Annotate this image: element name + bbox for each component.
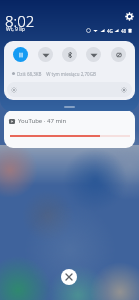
staticText: Wt, 9 lip <box>6 26 25 33</box>
button[interactable]: YouTube · 47 min <box>4 110 135 148</box>
button[interactable]: Brightness <box>7 82 132 97</box>
button[interactable]: Close <box>61 269 77 285</box>
button[interactable]: Auto rotate <box>111 47 126 62</box>
staticText: 4G <box>107 28 113 34</box>
button[interactable]: Settings <box>125 12 134 21</box>
staticText: Dziś 68,3KB W tym miesiącu 2,70GB <box>17 71 96 77</box>
staticText: 8:02 <box>5 11 35 31</box>
button[interactable]: Flashlight <box>86 47 101 62</box>
button[interactable]: Bluetooth <box>62 47 77 62</box>
staticText: 48 <box>121 28 127 34</box>
button[interactable]: Mobile data <box>13 47 28 62</box>
staticText: YouTube · 47 min <box>18 117 67 125</box>
button[interactable]: Wi-Fi <box>38 47 53 62</box>
